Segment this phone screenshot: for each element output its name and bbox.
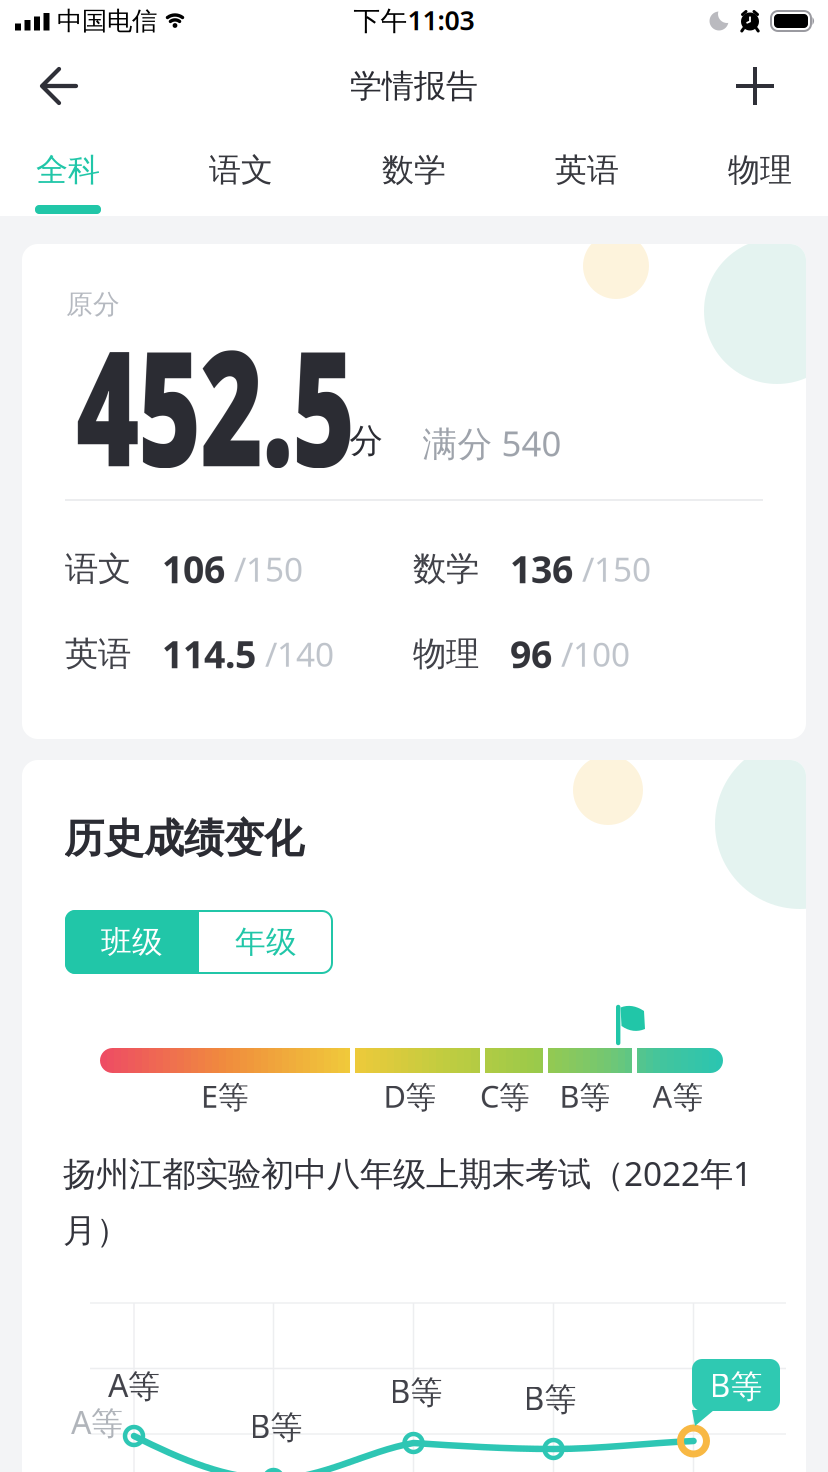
staticText: 满分 540 — [422, 420, 561, 466]
button[interactable]: Add — [724, 55, 786, 117]
staticText: 扬州江都实验初中八年级上期末考试（2022年1 月） — [63, 1151, 752, 1251]
staticText: D等 — [383, 1076, 436, 1116]
staticText: 英语 — [65, 633, 131, 674]
staticText: 136 — [510, 544, 573, 594]
staticText: 下午11:03 — [353, 2, 474, 38]
staticText: 学情报告 — [350, 66, 478, 106]
staticText: 物理 — [728, 150, 792, 190]
staticText: B等 — [709, 1364, 762, 1406]
staticText: 语文 — [209, 150, 273, 190]
staticText: 106 — [162, 544, 225, 594]
staticText: /150 — [573, 547, 651, 591]
staticText: 数学 — [413, 548, 479, 589]
staticText: 物理 — [413, 633, 479, 674]
staticText: 历史成绩变化 — [64, 814, 304, 863]
staticText: /150 — [225, 547, 303, 591]
button[interactable]: 语文 — [203, 142, 279, 198]
button[interactable]: 数学 — [376, 142, 452, 198]
staticText: 班级 — [101, 923, 163, 961]
staticText: /100 — [552, 632, 630, 676]
button[interactable]: 物理 — [722, 142, 798, 198]
staticText: 中国电信 — [57, 5, 157, 36]
button[interactable]: 班级 — [65, 910, 199, 974]
button[interactable]: Back — [14, 56, 90, 116]
staticText: E等 — [201, 1076, 249, 1116]
staticText: B等 — [523, 1377, 576, 1419]
staticText: B等 — [389, 1370, 442, 1412]
staticText: A等 — [108, 1364, 160, 1406]
staticText: 语文 — [65, 548, 131, 589]
staticText: B等 — [249, 1405, 302, 1447]
staticText: 年级 — [235, 923, 297, 961]
staticText: 英语 — [555, 150, 619, 190]
staticText: A等 — [71, 1401, 123, 1443]
staticText: B等 — [559, 1076, 610, 1116]
staticText: A等 — [652, 1076, 703, 1116]
staticText: 数学 — [382, 150, 446, 190]
staticText: /140 — [256, 632, 334, 676]
button[interactable]: 年级 — [199, 910, 333, 974]
staticText: 452.5 — [76, 298, 490, 510]
staticText: 全科 — [36, 150, 100, 190]
staticText: 原分 — [66, 288, 120, 321]
button[interactable]: 英语 — [549, 142, 625, 198]
staticText: 96 — [510, 629, 552, 679]
staticText: C等 — [480, 1076, 530, 1116]
staticText: 分 — [349, 420, 382, 461]
staticText: 114.5 — [162, 629, 256, 679]
button[interactable]: 全科 — [30, 142, 106, 198]
